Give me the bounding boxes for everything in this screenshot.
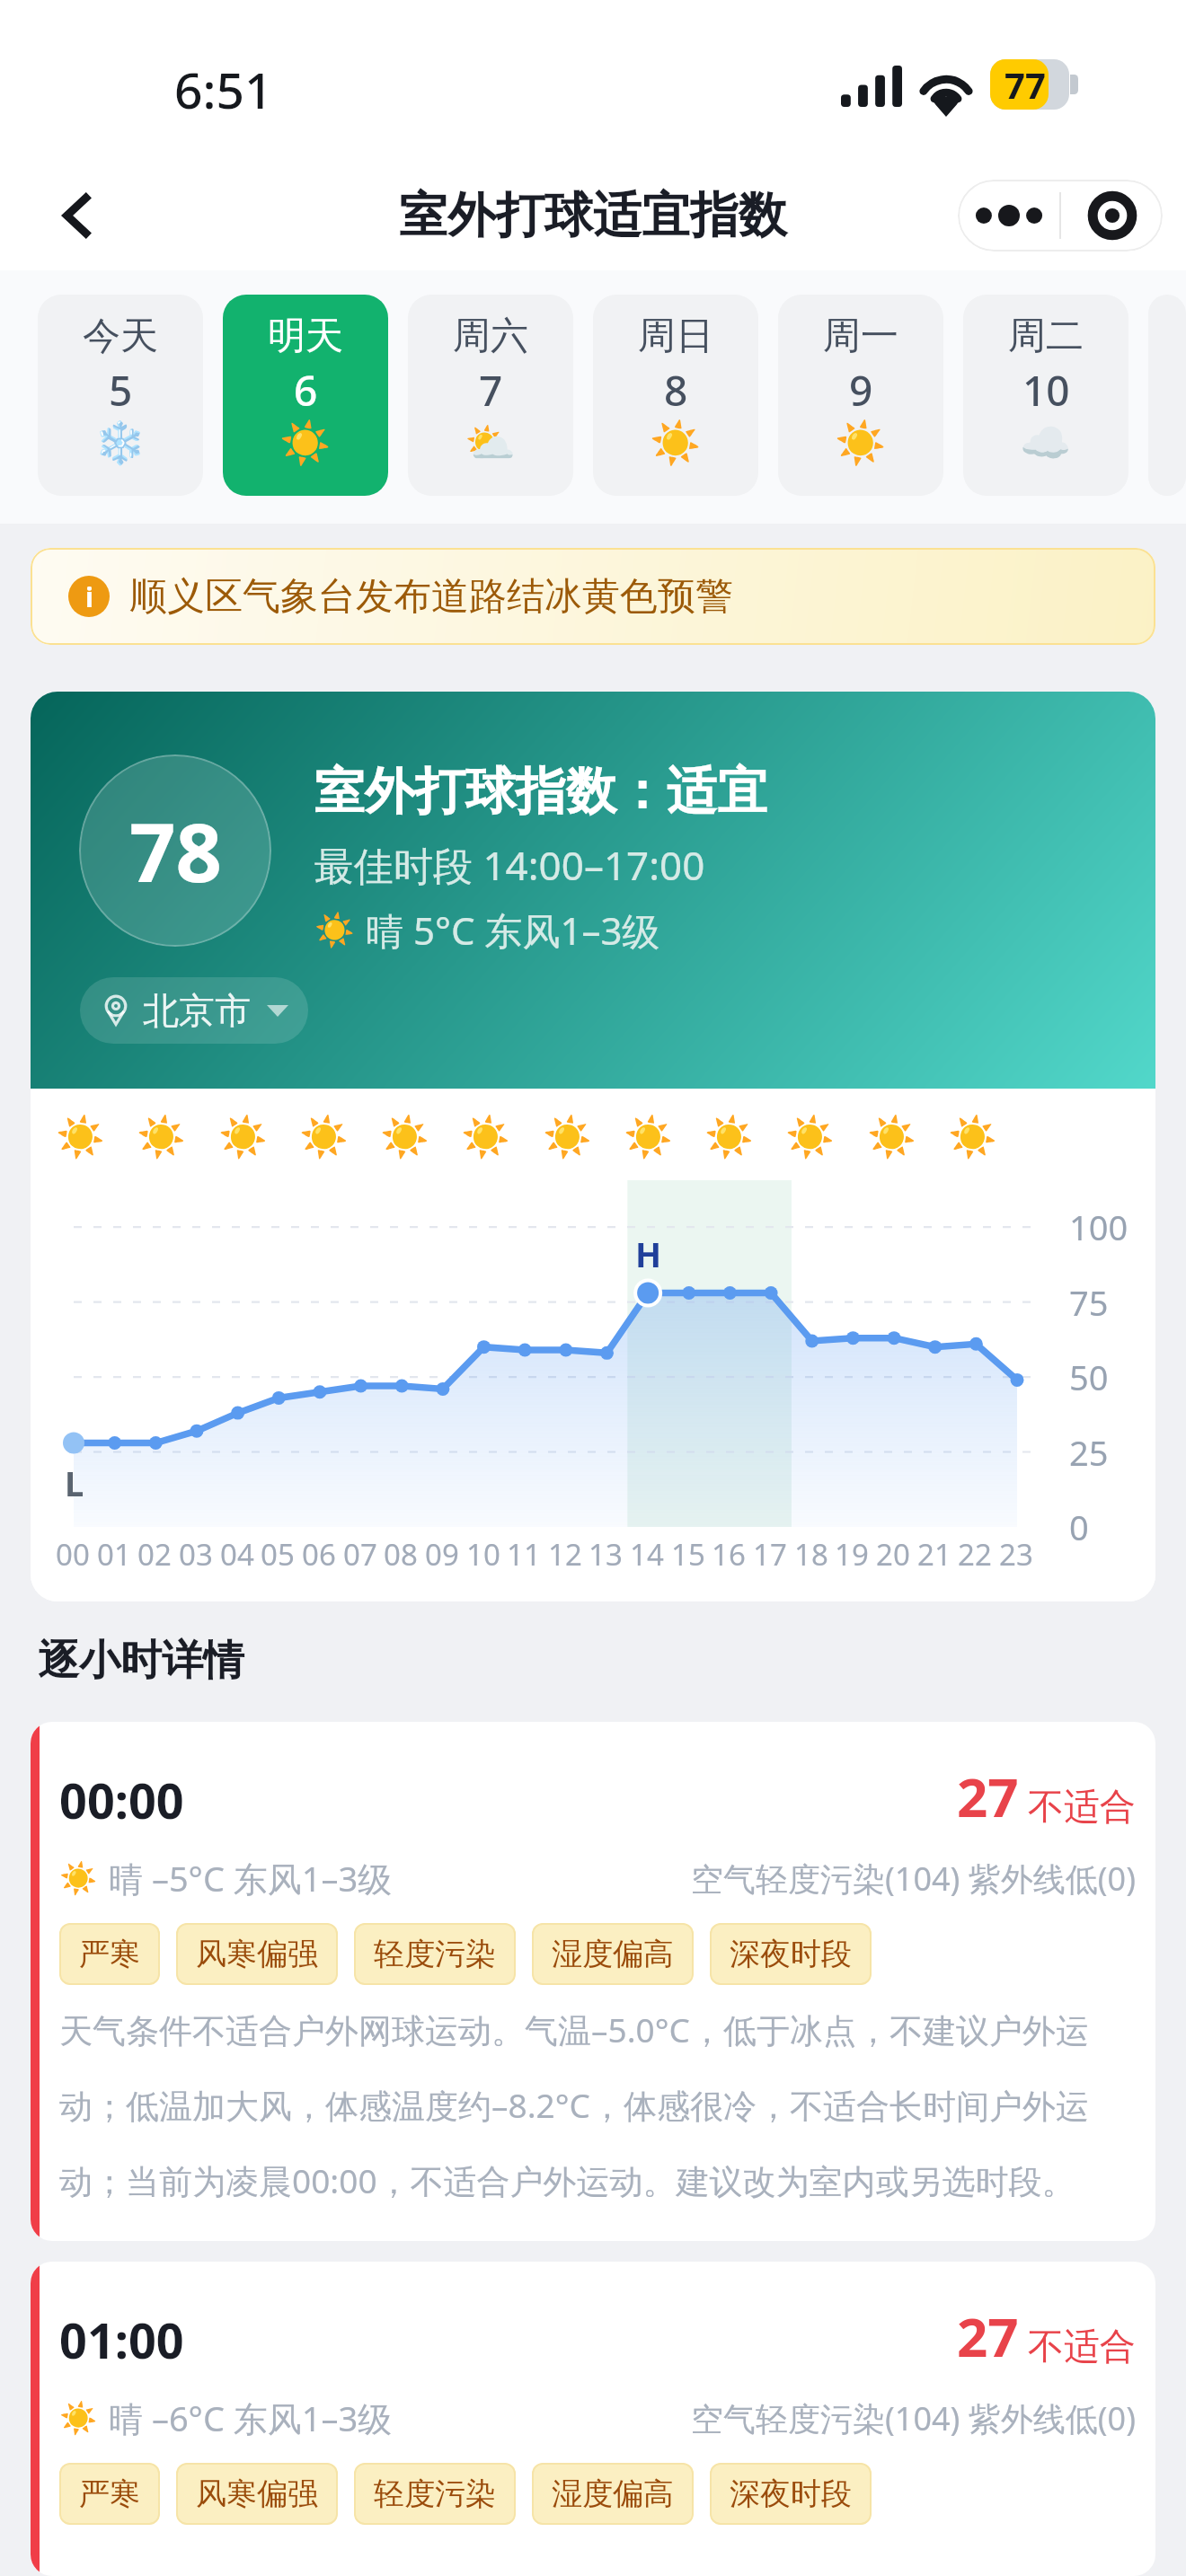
staticText: 天气条件不适合户外网球运动。气温–5.0°C，低于冰点，不建议户外运动；低温加大… [59, 2007, 1136, 2203]
staticText: 晴 5°C 东风1–3级 [366, 904, 660, 956]
staticText: ☀️ [380, 1114, 429, 1160]
staticText: 01:00 [59, 2307, 184, 2373]
staticText: 21 [917, 1534, 951, 1575]
staticText: 6:51 [174, 56, 273, 123]
staticText: 深夜时段 [730, 1935, 852, 1973]
staticText: 不适合 [1028, 1784, 1136, 1829]
staticText: ☀️ [218, 1114, 268, 1160]
staticText: 周二 [1008, 313, 1084, 360]
staticText: ☁️ [1020, 419, 1072, 467]
staticText: 轻度污染 [374, 1935, 496, 1973]
staticText: 逐小时详情 [38, 1635, 244, 1687]
staticText: ⛅ [465, 419, 517, 467]
staticText: 11 [507, 1534, 541, 1575]
staticText: 03 [179, 1534, 213, 1575]
button[interactable]: 周日 [593, 295, 758, 496]
button[interactable]: 周二 [963, 295, 1128, 496]
staticText: H [635, 1231, 662, 1277]
staticText: ❄️ [94, 419, 146, 467]
staticText: ☀️ [543, 1114, 592, 1160]
staticText: 27 [957, 1760, 1019, 1833]
staticText: 22 [958, 1534, 992, 1575]
staticText: 不适合 [1028, 2324, 1136, 2369]
staticText: ☀️ [56, 1114, 105, 1160]
staticText: 9 [849, 362, 873, 419]
staticText: 07 [343, 1534, 377, 1575]
button[interactable]: 00:00 [31, 1722, 1155, 2241]
staticText: L [65, 1460, 84, 1506]
staticText: 6 [294, 362, 318, 419]
staticText: ☀️ [835, 419, 887, 467]
staticText: 北京市 [143, 988, 251, 1033]
staticText: ☀️ [137, 1114, 186, 1160]
staticText: 5 [109, 362, 133, 419]
button[interactable]: 周一 [778, 295, 943, 496]
staticText: 06 [302, 1534, 336, 1575]
staticText: 27 [957, 2299, 1019, 2373]
staticText: 00 [56, 1534, 90, 1575]
button[interactable]: 返回 [40, 177, 117, 254]
staticText: 室外打球适宜指数 [399, 185, 787, 246]
staticText: 20 [876, 1534, 910, 1575]
staticText: i [85, 578, 93, 615]
staticText: ☀️ [461, 1114, 510, 1160]
staticText: 08 [384, 1534, 418, 1575]
staticText: 周六 [453, 313, 528, 360]
staticText: 16 [712, 1534, 746, 1575]
staticText: 严寒 [79, 1935, 140, 1973]
button[interactable]: 胶囊菜单 [1061, 180, 1163, 251]
staticText: ☀️ [785, 1114, 835, 1160]
staticText: 19 [835, 1534, 869, 1575]
staticText: 明天 [268, 313, 343, 360]
staticText: 今天 [83, 313, 158, 360]
staticText: 10 [466, 1534, 500, 1575]
staticText: ☀️ [948, 1114, 997, 1160]
staticText: 23 [999, 1534, 1033, 1575]
staticText: 空气轻度污染(104) 紫外线低(0) [691, 1857, 1136, 1901]
staticText: 轻度污染 [374, 2475, 496, 2513]
staticText: 75 [1069, 1279, 1109, 1326]
staticText: 最佳时段 14:00–17:00 [314, 838, 705, 892]
button[interactable]: 更多 [958, 180, 1059, 251]
staticText: 12 [548, 1534, 582, 1575]
button[interactable]: 北京市 [80, 977, 308, 1044]
staticText: 湿度偏高 [552, 2475, 674, 2513]
staticText: 湿度偏高 [552, 1935, 674, 1973]
staticText: 严寒 [79, 2475, 140, 2513]
button[interactable]: 01:00 [31, 2262, 1155, 2576]
button[interactable]: 明天 [223, 295, 388, 496]
staticText: 17 [753, 1534, 787, 1575]
staticText: 100 [1069, 1204, 1128, 1250]
staticText: ☀️ [279, 419, 332, 467]
staticText: 晴 –5°C 东风1–3级 [109, 1855, 393, 1901]
staticText: 14 [630, 1534, 664, 1575]
staticText: ☀️ [314, 912, 355, 949]
staticText: 0 [1069, 1504, 1089, 1550]
staticText: 10 [1022, 362, 1070, 419]
button[interactable]: 周六 [408, 295, 573, 496]
staticText: ☀️ [59, 1860, 98, 1896]
button[interactable]: i [31, 548, 1155, 645]
staticText: 13 [589, 1534, 623, 1575]
staticText: 15 [671, 1534, 705, 1575]
staticText: 50 [1069, 1354, 1109, 1400]
staticText: 05 [261, 1534, 295, 1575]
staticText: 01 [97, 1534, 131, 1575]
staticText: 风寒偏强 [196, 2475, 318, 2513]
staticText: 室外打球指数：适宜 [314, 760, 767, 824]
staticText: 77 [1005, 60, 1046, 109]
button[interactable]: 今天 [38, 295, 203, 496]
staticText: ☀️ [624, 1114, 673, 1160]
staticText: 18 [794, 1534, 828, 1575]
staticText: 周一 [823, 313, 898, 360]
staticText: 空气轻度污染(104) 紫外线低(0) [691, 2396, 1136, 2440]
staticText: 00:00 [59, 1767, 184, 1833]
staticText: 8 [664, 362, 688, 419]
staticText: ☀️ [59, 2400, 98, 2436]
staticText: 25 [1069, 1429, 1109, 1476]
staticText: 深夜时段 [730, 2475, 852, 2513]
staticText: 顺义区气象台发布道路结冰黄色预警 [129, 573, 733, 621]
staticText: 风寒偏强 [196, 1935, 318, 1973]
staticText: ☀️ [867, 1114, 916, 1160]
